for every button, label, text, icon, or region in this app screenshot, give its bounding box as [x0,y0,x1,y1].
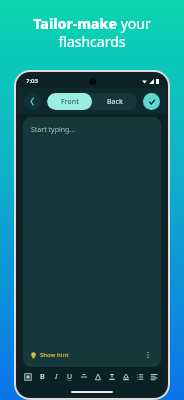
staticText: Tailor-make your flashcards [10,14,174,51]
button[interactable]: Fill color [119,370,133,384]
staticText: I [55,372,58,382]
button[interactable]: Back [24,93,41,110]
staticText: Front [61,97,79,107]
button[interactable]: Strikethrough [77,370,91,384]
button[interactable]: Text color [91,370,105,384]
button[interactable]: Format [21,370,35,384]
button[interactable]: Bold [35,370,49,384]
button[interactable]: Bulleted list [133,370,147,384]
staticText: Back [107,97,123,107]
staticText: 7:03 [26,77,38,85]
button[interactable]: More options [142,349,154,361]
staticText: B [40,372,45,382]
button[interactable]: Show hint [30,351,69,359]
staticText: Start typing... [31,125,76,135]
button[interactable]: Start typing... [23,117,161,367]
button[interactable]: Align [147,370,161,384]
button[interactable]: Back [92,93,137,110]
button[interactable]: Front [47,93,92,110]
button[interactable]: Italic [49,370,63,384]
button[interactable]: Save [143,93,160,110]
staticText: Show hint [40,351,69,359]
button[interactable]: Underline [63,370,77,384]
staticText: U [67,372,73,382]
button[interactable]: Highlight [105,370,119,384]
